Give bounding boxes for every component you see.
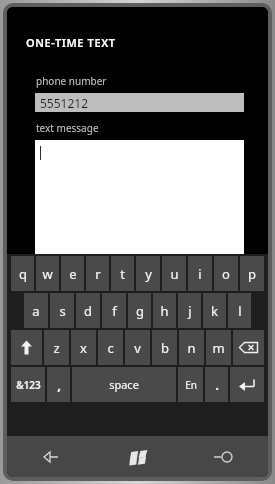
button[interactable]: Back [7,436,94,477]
button[interactable]: y [136,256,160,291]
button[interactable]: r [86,256,109,291]
staticText: , [57,376,61,394]
staticText: phone number [36,74,107,88]
button[interactable]: t [111,256,134,291]
button[interactable]: f [102,293,126,328]
staticText: a [32,302,40,320]
button[interactable]: Backspace [233,330,264,365]
staticText: w [42,265,53,283]
staticText: p [248,265,256,283]
button[interactable]: z [44,330,69,365]
staticText: z [53,339,60,357]
button[interactable]: i [188,256,212,291]
button[interactable]: k [203,293,226,328]
button[interactable]: 5551212 [35,93,244,112]
button[interactable]: x [71,330,96,365]
staticText: r [95,265,101,283]
button[interactable]: o [214,256,238,291]
button[interactable]: q [11,256,34,291]
staticText: u [170,265,179,283]
staticText: t [120,265,125,283]
button[interactable]: Home [94,436,181,477]
staticText: y [145,265,152,283]
staticText: d [84,302,92,320]
staticText: 5551212 [40,95,89,111]
button[interactable]: , [47,367,70,402]
button[interactable] [35,140,244,254]
staticText: ONE-TIME TEXT [26,35,116,50]
button[interactable]: j [178,293,201,328]
button[interactable]: w [36,256,59,291]
button[interactable]: g [128,293,151,328]
staticText: x [80,339,87,357]
staticText: space [109,377,139,392]
staticText: k [211,302,218,320]
staticText: n [187,339,196,357]
staticText: text message [36,121,99,135]
staticText: s [59,302,66,320]
button[interactable]: p [240,256,264,291]
staticText: q [19,265,27,283]
staticText: &123 [16,378,41,392]
button[interactable]: s [50,293,74,328]
button[interactable]: a [24,293,48,328]
button[interactable]: &123 [11,367,45,402]
button[interactable]: e [61,256,84,291]
button[interactable]: n [179,330,204,365]
button[interactable]: En [178,367,203,402]
button[interactable]: . [205,367,228,402]
button[interactable]: Shift [11,330,42,365]
staticText: m [212,339,225,357]
staticText: j [188,302,192,320]
staticText: g [136,302,144,320]
button[interactable]: h [153,293,176,328]
staticText: v [134,339,141,357]
staticText: e [69,265,77,283]
button[interactable]: b [152,330,177,365]
button[interactable]: l [228,293,251,328]
staticText: o [222,265,230,283]
button[interactable]: Enter [230,367,264,402]
staticText: f [112,302,117,320]
button[interactable]: space [72,367,176,402]
button[interactable]: Search [181,436,268,477]
staticText: h [160,302,169,320]
staticText: c [107,339,114,357]
button[interactable]: v [125,330,150,365]
staticText: b [161,339,169,357]
button[interactable]: m [206,330,231,365]
staticText: l [238,302,242,320]
button[interactable]: c [98,330,123,365]
staticText: . [215,376,219,394]
staticText: i [198,265,202,283]
button[interactable]: d [76,293,100,328]
button[interactable]: u [162,256,186,291]
staticText: En [185,378,197,392]
